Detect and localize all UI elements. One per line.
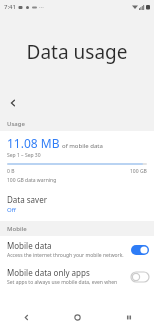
staticText: Mobile data bbox=[7, 240, 52, 251]
staticText: Data saver bbox=[7, 194, 47, 205]
staticText: Off bbox=[7, 206, 16, 214]
staticText: 100 GB bbox=[130, 168, 147, 175]
staticText: 0 B bbox=[7, 168, 15, 175]
button[interactable]: Toggle off bbox=[131, 272, 149, 282]
staticText: Mobile bbox=[7, 225, 27, 233]
button[interactable]: Data saver bbox=[0, 190, 154, 218]
staticText: ··· bbox=[39, 3, 44, 11]
button[interactable]: Home bbox=[52, 309, 103, 326]
staticText: 7:41 bbox=[4, 3, 16, 11]
staticText: Usage bbox=[7, 120, 25, 128]
button[interactable]: Back bbox=[0, 309, 52, 326]
staticText: Sep 1 – Sep 30 bbox=[7, 152, 41, 159]
button[interactable]: 11.08 MB bbox=[0, 131, 154, 190]
button[interactable]: Toggle on bbox=[131, 245, 149, 255]
staticText: of mobile data bbox=[62, 142, 103, 150]
button[interactable]: Back bbox=[4, 94, 22, 112]
staticText: 100 GB data warning bbox=[7, 177, 57, 184]
button[interactable]: Mobile data bbox=[0, 236, 154, 263]
button[interactable]: Recents bbox=[103, 309, 154, 326]
staticText: Access the internet through your mobile … bbox=[7, 252, 124, 259]
button[interactable]: Mobile data only apps bbox=[0, 263, 154, 290]
staticText: Data usage bbox=[0, 39, 154, 65]
staticText: Mobile data only apps bbox=[7, 267, 90, 278]
staticText: 11.08 MB bbox=[7, 135, 60, 151]
staticText: Set apps to always use mobile data, even… bbox=[7, 279, 118, 286]
